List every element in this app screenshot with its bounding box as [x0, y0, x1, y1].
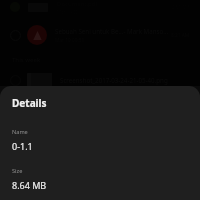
- staticText: 0-1.1: [12, 140, 33, 152]
- staticText: Size: [12, 167, 23, 175]
- staticText: Details: [12, 96, 47, 110]
- button[interactable]: Name: [12, 128, 188, 152]
- button[interactable]: Sebuah Seni untuk Be...- Mark Manson.pdf: [0, 22, 200, 48]
- button[interactable]: Screenshot_2017-03-24-21-05-40.png: [0, 69, 200, 91]
- staticText: Name: [12, 128, 28, 136]
- button[interactable]: Size: [12, 167, 188, 191]
- staticText: 8.64 MB: [12, 179, 47, 191]
